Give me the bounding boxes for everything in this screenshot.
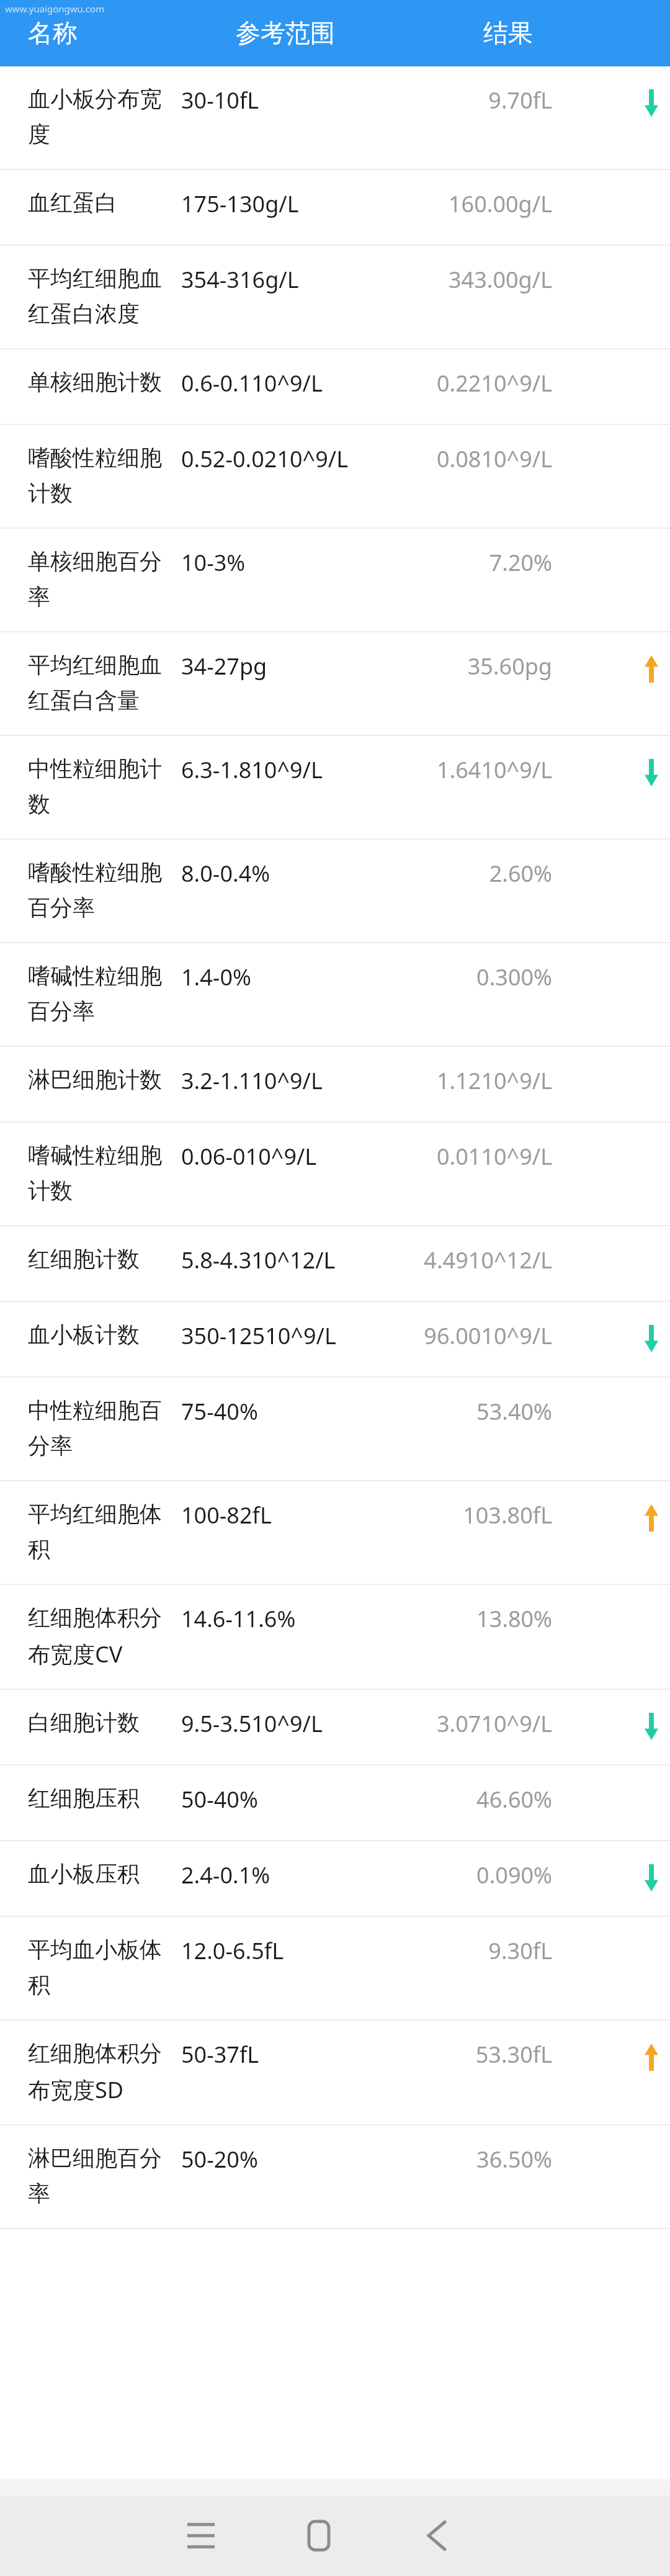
- button[interactable]: 单核细胞计数: [0, 349, 670, 424]
- button[interactable]: 血红蛋白: [0, 170, 670, 245]
- staticText: 30-10fL: [181, 85, 259, 115]
- other: Below range: [645, 1713, 658, 1740]
- staticText: 50-37fL: [181, 2039, 259, 2070]
- staticText: 淋巴细胞百分率: [28, 2144, 175, 2208]
- staticText: 血小板分布宽度: [28, 85, 175, 149]
- other: Above range: [645, 2044, 658, 2071]
- staticText: 血小板计数: [28, 1321, 140, 1349]
- other: Below range: [645, 1325, 658, 1352]
- staticText: 中性粒细胞计数: [28, 755, 175, 819]
- staticText: 0.0810^9/L: [436, 444, 552, 474]
- staticText: 平均红细胞血红蛋白含量: [28, 651, 175, 715]
- button[interactable]: Back: [396, 2495, 477, 2576]
- staticText: 白细胞计数: [28, 1708, 140, 1736]
- staticText: 0.6-0.110^9/L: [181, 368, 323, 398]
- button[interactable]: 淋巴细胞计数: [0, 1047, 670, 1121]
- staticText: 嗜酸性粒细胞计数: [28, 444, 175, 508]
- staticText: 0.0110^9/L: [436, 1141, 552, 1172]
- button[interactable]: Home: [279, 2495, 359, 2576]
- button[interactable]: 平均血小板体积: [0, 1917, 670, 2019]
- button[interactable]: 淋巴细胞百分率: [0, 2125, 670, 2228]
- other: Below range: [645, 1864, 658, 1892]
- other: Below range: [645, 759, 658, 786]
- button[interactable]: 红细胞压积: [0, 1766, 670, 1840]
- staticText: 9.30fL: [488, 1936, 552, 1966]
- button[interactable]: Recent apps: [161, 2495, 241, 2576]
- button[interactable]: 嗜碱性粒细胞百分率: [0, 943, 670, 1046]
- staticText: 3.0710^9/L: [436, 1708, 552, 1739]
- button[interactable]: 红细胞体积分布宽度CV: [0, 1585, 670, 1689]
- staticText: 13.80%: [476, 1604, 552, 1634]
- staticText: 红细胞体积分布宽度SD: [28, 2039, 175, 2104]
- staticText: 5.8-4.310^12/L: [181, 1245, 336, 1275]
- staticText: 0.06-010^9/L: [181, 1141, 317, 1172]
- staticText: 6.3-1.810^9/L: [181, 755, 323, 785]
- button[interactable]: 中性粒细胞计数: [0, 736, 670, 838]
- other: Below range: [645, 89, 658, 117]
- staticText: 1.4-0%: [181, 962, 251, 992]
- staticText: 14.6-11.6%: [181, 1604, 296, 1634]
- staticText: 平均红细胞体积: [28, 1500, 175, 1564]
- other: Above range: [645, 655, 658, 683]
- staticText: 嗜酸性粒细胞百分率: [28, 858, 175, 922]
- button[interactable]: 单核细胞百分率: [0, 529, 670, 631]
- button[interactable]: 血小板压积: [0, 1841, 670, 1916]
- button[interactable]: 平均红细胞血红蛋白含量: [0, 632, 670, 735]
- staticText: 名称: [28, 17, 78, 48]
- staticText: 平均血小板体积: [28, 1936, 175, 1999]
- staticText: 0.52-0.0210^9/L: [181, 444, 349, 474]
- staticText: 10-3%: [181, 547, 246, 578]
- button[interactable]: 血小板分布宽度: [0, 66, 670, 169]
- staticText: 0.090%: [476, 1860, 552, 1890]
- staticText: 53.30fL: [475, 2039, 552, 2070]
- button[interactable]: 血小板计数: [0, 1302, 670, 1376]
- staticText: 9.5-3.510^9/L: [181, 1708, 323, 1739]
- staticText: 红细胞计数: [28, 1245, 140, 1273]
- staticText: 平均红细胞血红蛋白浓度: [28, 264, 175, 328]
- button[interactable]: 中性粒细胞百分率: [0, 1378, 670, 1480]
- staticText: 2.4-0.1%: [181, 1860, 270, 1890]
- staticText: 35.60pg: [467, 651, 552, 681]
- staticText: 淋巴细胞计数: [28, 1066, 162, 1093]
- staticText: 350-12510^9/L: [181, 1321, 336, 1351]
- button[interactable]: 红细胞计数: [0, 1226, 670, 1301]
- staticText: 红细胞体积分布宽度CV: [28, 1604, 175, 1669]
- staticText: 36.50%: [476, 2144, 552, 2174]
- staticText: 1.1210^9/L: [436, 1066, 552, 1096]
- button[interactable]: 嗜酸性粒细胞计数: [0, 425, 670, 527]
- staticText: 嗜碱性粒细胞百分率: [28, 962, 175, 1026]
- button[interactable]: 红细胞体积分布宽度SD: [0, 2021, 670, 2124]
- staticText: www.yuaigongwu.com: [5, 2, 105, 15]
- staticText: 9.70fL: [488, 85, 552, 115]
- staticText: 12.0-6.5fL: [181, 1936, 284, 1966]
- staticText: 血小板压积: [28, 1860, 140, 1888]
- staticText: 血红蛋白: [28, 189, 117, 217]
- staticText: 单核细胞百分率: [28, 547, 175, 611]
- staticText: 红细胞压积: [28, 1784, 140, 1812]
- staticText: 103.80fL: [463, 1500, 552, 1530]
- button[interactable]: 平均红细胞体积: [0, 1481, 670, 1584]
- staticText: 2.60%: [489, 858, 552, 889]
- staticText: 7.20%: [489, 547, 552, 578]
- button[interactable]: 嗜酸性粒细胞百分率: [0, 840, 670, 942]
- staticText: 50-20%: [181, 2144, 258, 2174]
- button[interactable]: 平均红细胞血红蛋白浓度: [0, 246, 670, 348]
- staticText: 结果: [483, 17, 533, 48]
- staticText: 4.4910^12/L: [424, 1245, 552, 1275]
- staticText: 34-27pg: [181, 651, 267, 681]
- button[interactable]: 嗜碱性粒细胞计数: [0, 1123, 670, 1225]
- staticText: 1.6410^9/L: [436, 755, 552, 785]
- staticText: 8.0-0.4%: [181, 858, 270, 889]
- staticText: 100-82fL: [181, 1500, 272, 1530]
- staticText: 参考范围: [236, 17, 335, 48]
- staticText: 嗜碱性粒细胞计数: [28, 1141, 175, 1205]
- staticText: 单核细胞计数: [28, 368, 162, 396]
- staticText: 354-316g/L: [181, 264, 299, 295]
- staticText: 50-40%: [181, 1784, 258, 1815]
- staticText: 0.2210^9/L: [436, 368, 552, 398]
- staticText: 175-130g/L: [181, 189, 299, 219]
- button[interactable]: 白细胞计数: [0, 1690, 670, 1764]
- other: Above range: [645, 1504, 658, 1532]
- staticText: 160.00g/L: [448, 189, 552, 219]
- staticText: 3.2-1.110^9/L: [181, 1066, 323, 1096]
